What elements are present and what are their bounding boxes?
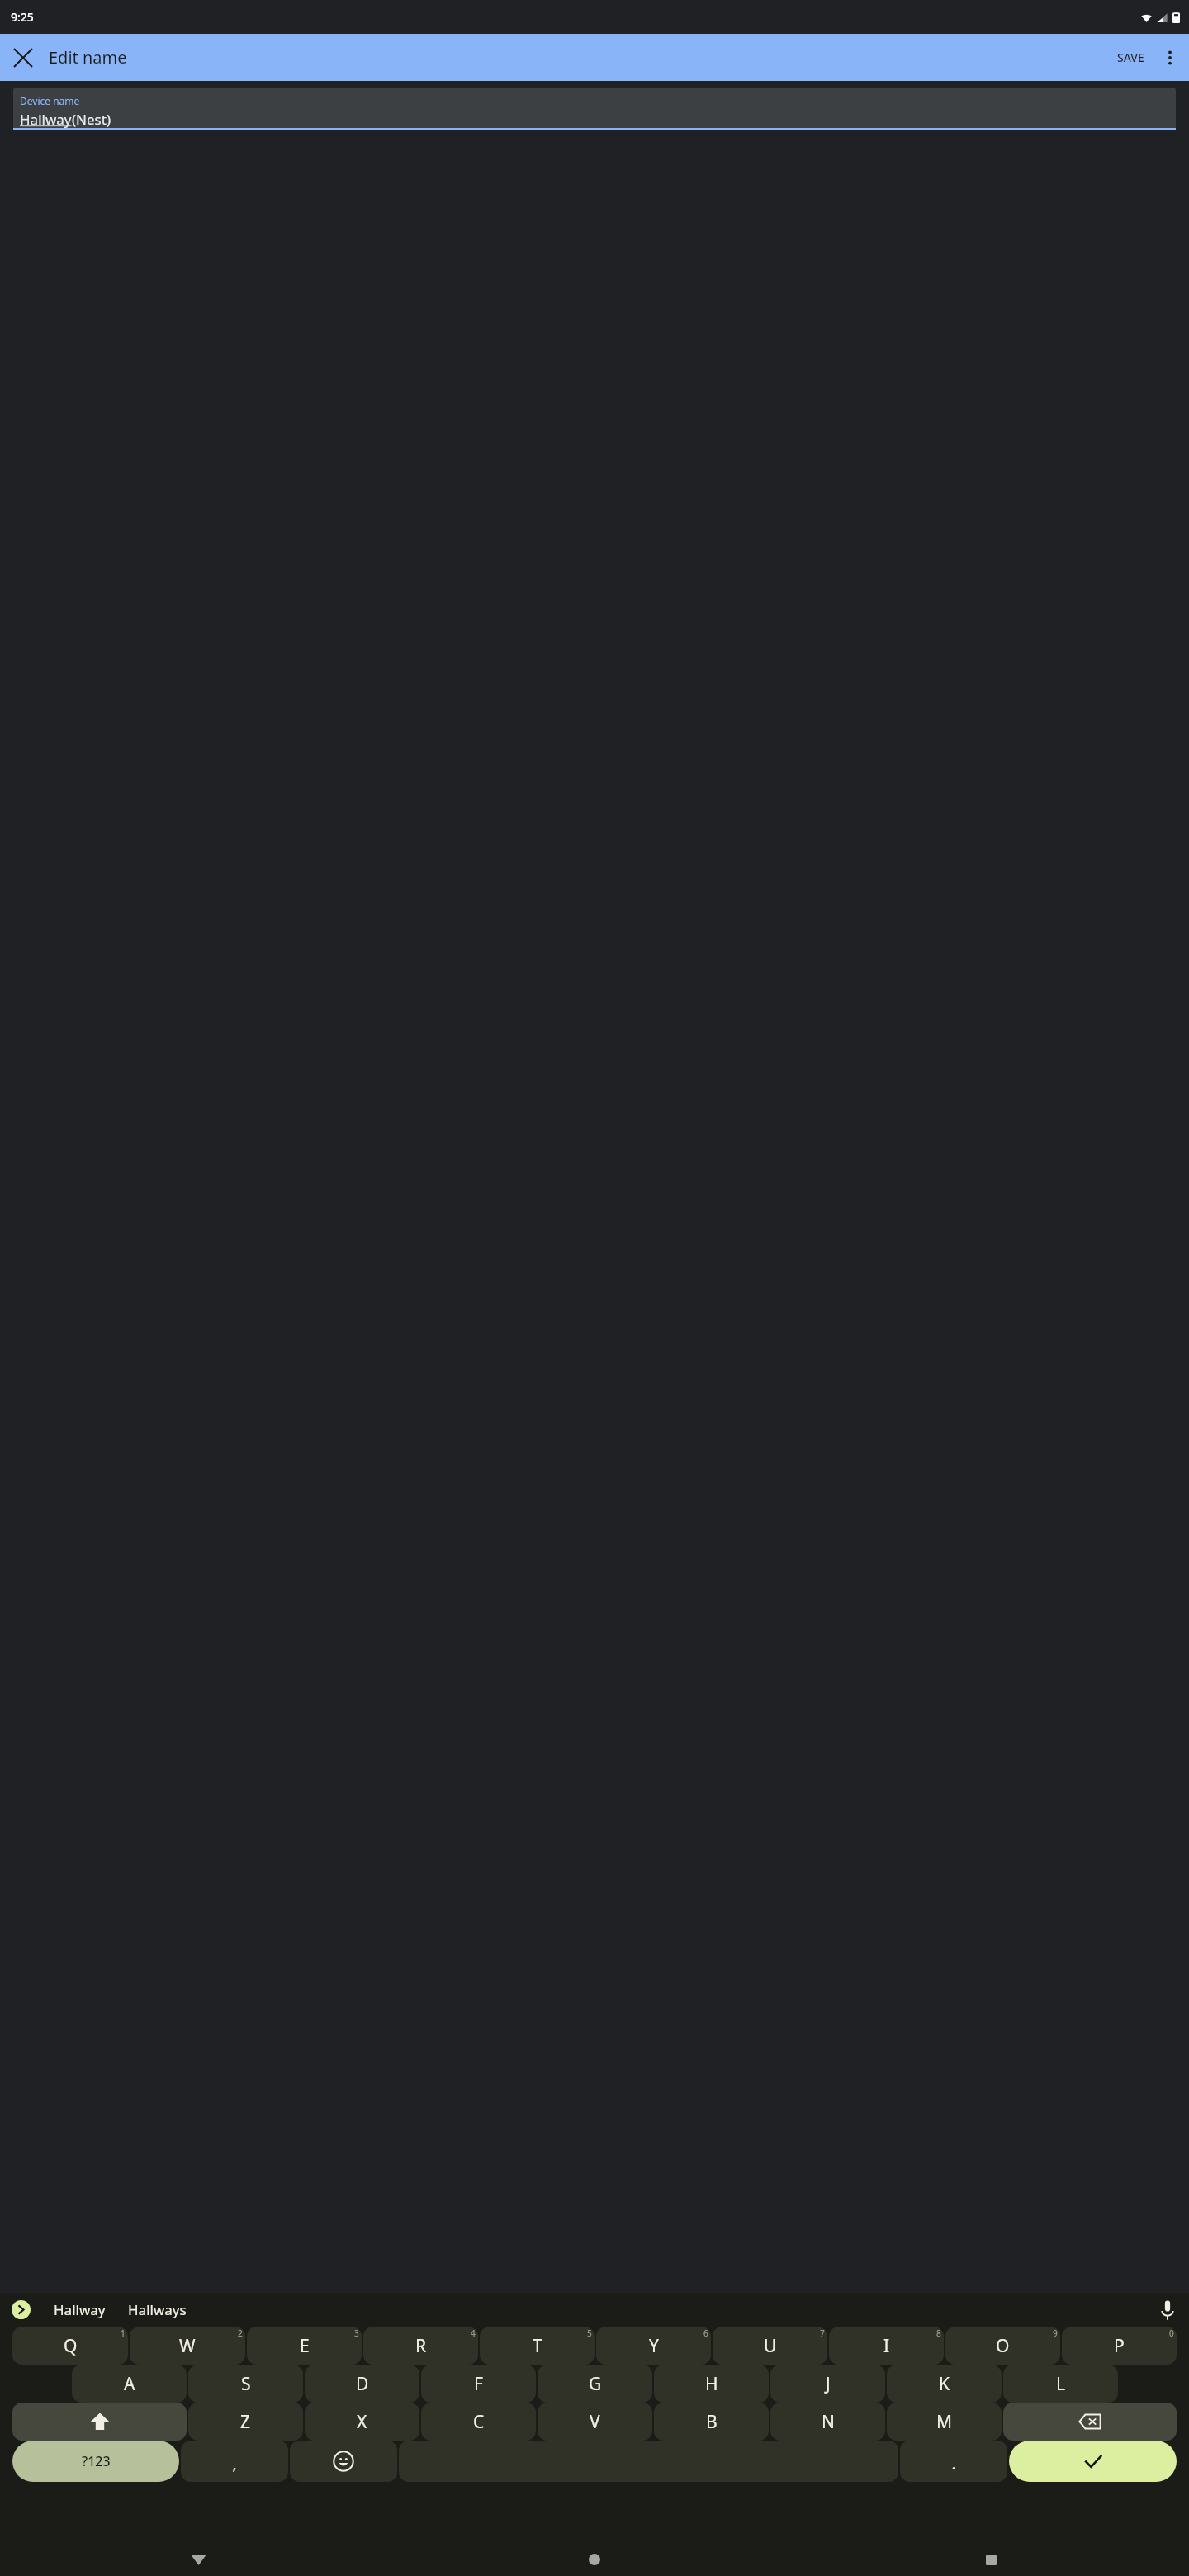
staticText: H <box>705 2372 718 2396</box>
button[interactable]: W <box>130 2327 245 2365</box>
button[interactable]: Y <box>596 2327 711 2365</box>
button[interactable]: T <box>480 2327 594 2365</box>
button[interactable]: L <box>1003 2365 1118 2403</box>
staticText: X <box>357 2410 367 2434</box>
staticText: F <box>474 2372 483 2396</box>
staticText: Device name <box>20 94 80 107</box>
button[interactable]: M <box>887 2403 1002 2441</box>
button[interactable]: Shift <box>12 2403 187 2441</box>
staticText: 2 <box>238 2327 243 2339</box>
button[interactable]: K <box>887 2365 1002 2403</box>
staticText: K <box>939 2372 950 2396</box>
button[interactable]: ?123 <box>12 2441 179 2482</box>
button[interactable]: D <box>305 2365 419 2403</box>
staticText: D <box>356 2372 369 2396</box>
button[interactable]: S <box>188 2365 303 2403</box>
button[interactable]: C <box>421 2403 536 2441</box>
button[interactable]: Hide keyboard <box>0 2543 396 2576</box>
staticText: 9:25 <box>11 9 34 25</box>
button[interactable]: J <box>770 2365 885 2403</box>
staticText: C <box>473 2410 485 2434</box>
staticText: U <box>764 2334 777 2358</box>
button[interactable]: Enter <box>1009 2441 1177 2482</box>
staticText: 3 <box>354 2327 359 2339</box>
button[interactable]: B <box>654 2403 769 2441</box>
staticText: 6 <box>703 2327 708 2339</box>
staticText: . <box>951 2453 956 2474</box>
staticText: L <box>1056 2372 1066 2396</box>
staticText: Hallway <box>20 110 72 128</box>
button[interactable]: Close <box>5 40 40 75</box>
button[interactable]: Voice input <box>1154 2297 1180 2323</box>
staticText: 7 <box>820 2327 825 2339</box>
button[interactable]: Emoji <box>290 2441 397 2482</box>
button[interactable]: E <box>247 2327 362 2365</box>
button[interactable]: Recents <box>793 2543 1189 2576</box>
staticText: R <box>415 2334 427 2358</box>
staticText: M <box>936 2410 953 2434</box>
staticText: 9 <box>1053 2327 1058 2339</box>
button[interactable]: A <box>72 2365 187 2403</box>
staticText: 4 <box>471 2327 476 2339</box>
staticText: Q <box>64 2334 78 2358</box>
button[interactable]: N <box>770 2403 885 2441</box>
staticText: W <box>179 2334 196 2358</box>
button[interactable]: Hallway <box>41 2293 118 2327</box>
button[interactable]: F <box>421 2365 536 2403</box>
staticText: G <box>589 2372 602 2396</box>
staticText: B <box>706 2410 718 2434</box>
button[interactable]: P <box>1062 2327 1177 2365</box>
staticText: (Nest) <box>72 110 111 128</box>
button[interactable]: , <box>181 2441 288 2482</box>
button[interactable]: Device name <box>13 88 1176 128</box>
staticText: , <box>232 2453 237 2474</box>
button[interactable]: X <box>305 2403 419 2441</box>
button[interactable]: R <box>363 2327 478 2365</box>
staticText: ?123 <box>82 2452 111 2470</box>
staticText: J <box>826 2372 831 2396</box>
button[interactable]: SAVE <box>1107 41 1154 73</box>
button[interactable]: Expand suggestions <box>12 2300 31 2319</box>
button[interactable]: Z <box>188 2403 303 2441</box>
button[interactable]: . <box>900 2441 1007 2482</box>
staticText: I <box>883 2334 890 2358</box>
staticText: 1 <box>121 2327 126 2339</box>
staticText: 0 <box>1169 2327 1174 2339</box>
button[interactable]: V <box>538 2403 652 2441</box>
button[interactable]: Home <box>396 2543 793 2576</box>
staticText: 5 <box>587 2327 592 2339</box>
staticText: V <box>590 2410 600 2434</box>
staticText: 8 <box>936 2327 941 2339</box>
staticText: T <box>533 2334 542 2358</box>
staticText: O <box>996 2334 1010 2358</box>
staticText: E <box>300 2334 310 2358</box>
staticText: P <box>1114 2334 1125 2358</box>
staticText: Hallways <box>128 2300 187 2319</box>
staticText: Edit name <box>49 46 127 69</box>
button[interactable]: I <box>829 2327 944 2365</box>
staticText: Z <box>240 2410 251 2434</box>
staticText: SAVE <box>1117 50 1144 65</box>
staticText: A <box>124 2372 135 2396</box>
button[interactable]: H <box>654 2365 769 2403</box>
staticText: Y <box>649 2334 659 2358</box>
button[interactable]: Hallways <box>118 2293 196 2327</box>
button[interactable]: U <box>713 2327 827 2365</box>
button[interactable]: Backspace <box>1003 2403 1177 2441</box>
button[interactable]: O <box>945 2327 1060 2365</box>
button[interactable]: More options <box>1154 42 1185 73</box>
button[interactable]: G <box>538 2365 652 2403</box>
button[interactable]: Q <box>12 2327 128 2365</box>
staticText: Hallway <box>54 2300 106 2319</box>
staticText: S <box>241 2372 251 2396</box>
staticText: N <box>822 2410 835 2434</box>
